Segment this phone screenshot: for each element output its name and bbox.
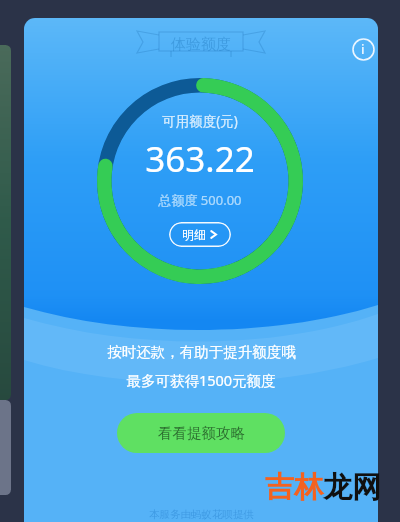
staticText: 看看提额攻略: [158, 424, 245, 442]
button[interactable]: 明细: [169, 222, 231, 247]
staticText: 本服务由蚂蚁花呗提供: [149, 508, 254, 521]
button[interactable]: 看看提额攻略: [117, 413, 285, 453]
staticText: 最多可获得1500元额度: [126, 370, 276, 390]
staticText: 吉林: [265, 469, 323, 506]
staticText: 龙网: [323, 469, 381, 506]
staticText: i: [361, 40, 365, 58]
staticText: 按时还款，有助于提升额度哦: [107, 343, 296, 361]
staticText: 明细: [182, 227, 206, 242]
staticText: 总额度 500.00: [158, 191, 242, 209]
staticText: 可用额度(元): [162, 112, 238, 130]
staticText: 363.22: [145, 135, 255, 183]
staticText: 体验额度: [171, 35, 231, 54]
button[interactable]: Information: [342, 28, 378, 70]
